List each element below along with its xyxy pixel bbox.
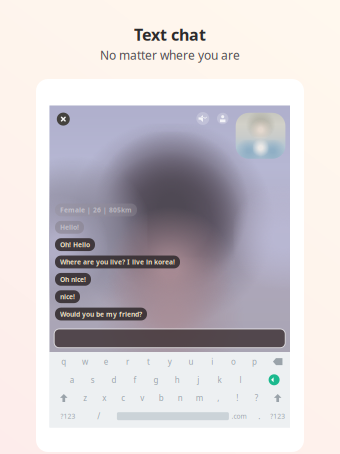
button[interactable]: s <box>84 371 102 389</box>
button[interactable]: j <box>189 371 207 389</box>
button[interactable]: r <box>118 352 136 371</box>
staticText: Oh nice! <box>60 275 86 284</box>
staticText: c <box>121 393 125 403</box>
button[interactable]: Message field <box>54 329 285 348</box>
button[interactable]: i <box>203 352 221 371</box>
button[interactable]: ! <box>228 389 246 407</box>
button[interactable]: k <box>210 371 228 389</box>
staticText: , <box>217 393 219 403</box>
button[interactable]: g <box>147 371 165 389</box>
button[interactable]: h <box>168 371 186 389</box>
staticText: o <box>231 356 236 367</box>
button[interactable]: z <box>76 389 94 407</box>
staticText: k <box>217 374 221 385</box>
button[interactable]: Backspace <box>267 352 289 371</box>
staticText: d <box>111 374 116 385</box>
staticText: / <box>97 411 100 421</box>
staticText: f <box>133 374 136 385</box>
staticText: No matter where you are <box>100 47 240 63</box>
staticText: j <box>197 374 199 385</box>
staticText: g <box>154 374 159 385</box>
staticText: Hello! <box>60 223 79 232</box>
button[interactable]: v <box>133 389 151 407</box>
button[interactable]: m <box>190 389 208 407</box>
button[interactable]: Shift <box>55 389 73 407</box>
staticText: u <box>188 356 193 367</box>
button[interactable]: l <box>231 371 249 389</box>
staticText: r <box>126 356 129 367</box>
button[interactable]: y <box>161 352 179 371</box>
staticText: e <box>104 356 109 367</box>
staticText: ?123 <box>61 412 76 421</box>
button[interactable]: / <box>90 407 108 425</box>
staticText: h <box>175 374 180 385</box>
button[interactable]: , <box>209 389 227 407</box>
staticText: n <box>178 393 183 403</box>
button[interactable]: u <box>182 352 200 371</box>
staticText: v <box>140 393 144 403</box>
button[interactable]: .com <box>225 407 253 425</box>
button[interactable]: ?123 <box>54 407 82 425</box>
staticText: Text chat <box>134 24 206 45</box>
staticText: s <box>91 374 95 385</box>
staticText: x <box>102 393 106 403</box>
button[interactable]: ?123 <box>264 407 292 425</box>
staticText: ? <box>255 393 258 403</box>
staticText: Oh! Hello <box>60 240 90 249</box>
staticText: Female | 26 | 805km <box>60 205 132 214</box>
staticText: q <box>61 356 66 367</box>
button[interactable]: f <box>126 371 144 389</box>
staticText: . <box>258 411 260 421</box>
button[interactable]: Mute microphone <box>217 113 228 124</box>
button[interactable]: t <box>140 352 158 371</box>
staticText: ?123 <box>270 412 285 421</box>
button[interactable]: w <box>76 352 94 371</box>
staticText: i <box>211 356 213 367</box>
button[interactable]: End call <box>57 113 70 126</box>
button[interactable]: c <box>114 389 132 407</box>
staticText: Would you be my friend? <box>60 310 142 318</box>
button[interactable]: p <box>246 352 264 371</box>
button[interactable]: o <box>224 352 242 371</box>
button[interactable]: ? <box>247 389 265 407</box>
staticText: ! <box>236 393 238 403</box>
staticText: y <box>168 356 172 367</box>
button[interactable]: Send <box>263 371 285 389</box>
button[interactable]: q <box>55 352 73 371</box>
button[interactable]: e <box>97 352 115 371</box>
staticText: b <box>159 393 164 403</box>
staticText: p <box>252 356 257 367</box>
staticText: m <box>196 393 203 403</box>
staticText: Where are you live? I live in korea! <box>60 258 175 266</box>
staticText: nice! <box>60 292 75 301</box>
button[interactable]: Speaker <box>196 112 209 125</box>
staticText: l <box>239 374 241 385</box>
button[interactable]: . <box>250 407 268 425</box>
button[interactable]: x <box>95 389 113 407</box>
button[interactable]: Space <box>117 407 229 425</box>
staticText: .com <box>231 412 246 421</box>
staticText: a <box>70 374 74 385</box>
staticText: w <box>82 356 88 367</box>
button[interactable]: b <box>152 389 170 407</box>
button[interactable]: Shift <box>269 389 287 407</box>
button[interactable]: a <box>63 371 81 389</box>
button[interactable]: d <box>105 371 123 389</box>
staticText: t <box>147 356 150 367</box>
button[interactable]: n <box>171 389 189 407</box>
staticText: z <box>83 393 87 403</box>
